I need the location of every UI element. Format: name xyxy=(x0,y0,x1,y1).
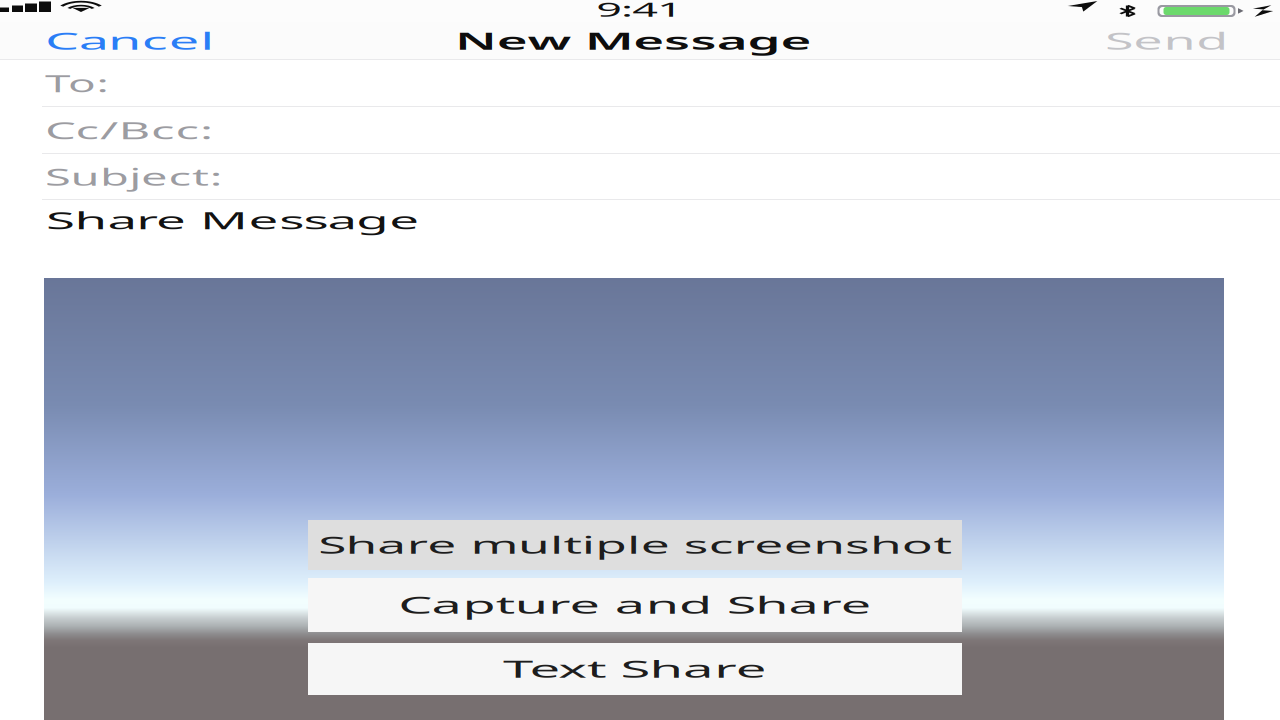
button[interactable]: Share multiple screenshot xyxy=(308,520,962,570)
staticText: Text Share xyxy=(580,654,690,684)
staticText: Subject: xyxy=(45,161,135,192)
staticText: Cancel xyxy=(45,25,120,56)
staticText: Send xyxy=(1105,25,1162,56)
staticText: Share Message xyxy=(46,204,216,236)
staticText: Cc/Bcc: xyxy=(45,114,127,146)
staticText: Capture and Share xyxy=(535,590,734,620)
button[interactable]: Cancel xyxy=(35,25,219,55)
button[interactable]: Text Share xyxy=(308,643,962,695)
staticText: To: xyxy=(45,67,78,99)
staticText: New Message xyxy=(455,25,617,56)
button[interactable]: Send xyxy=(1095,25,1233,55)
button[interactable]: Capture and Share xyxy=(308,578,962,632)
staticText: 9:41 xyxy=(620,0,658,22)
staticText: Share multiple screenshot xyxy=(495,530,774,560)
